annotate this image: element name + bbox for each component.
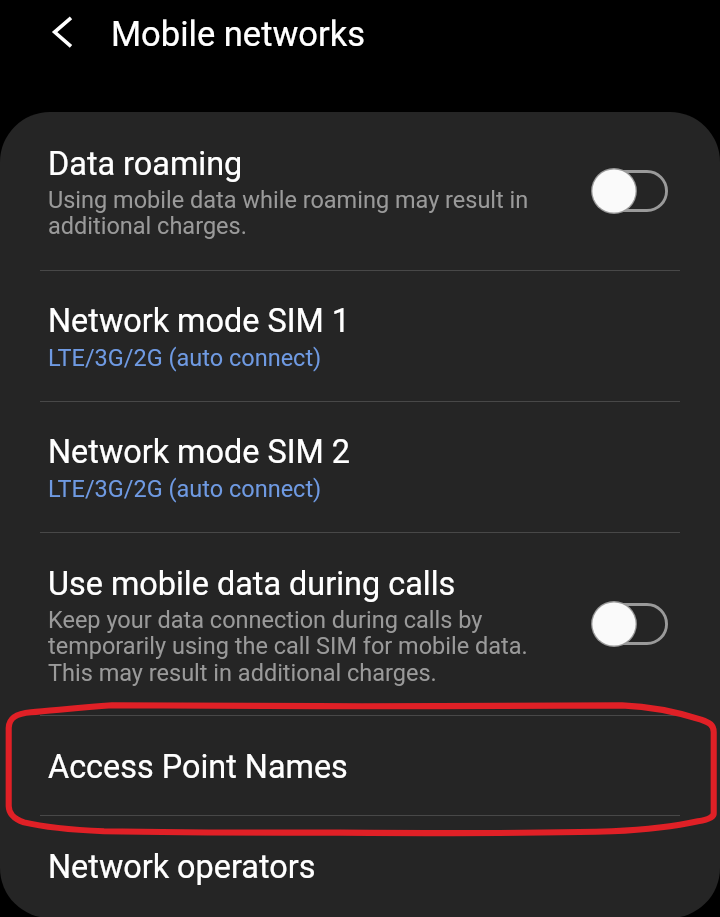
staticText: Using mobile data while roaming may resu… [48,186,548,240]
staticText: Network operators [48,848,316,886]
staticText: Mobile networks [111,14,366,54]
staticText: Data roaming [48,145,243,183]
staticText: LTE/3G/2G (auto connect) [48,344,322,372]
button[interactable]: Network operators [0,816,720,916]
button[interactable]: Network mode SIM 2 [0,402,720,533]
staticText: Network mode SIM 1 [48,302,351,340]
staticText: Use mobile data during calls [48,565,456,603]
button[interactable]: Access Point Names [0,716,720,815]
button[interactable]: Use mobile data during calls [0,533,720,715]
staticText: Keep your data connection during calls b… [48,606,548,687]
staticText: LTE/3G/2G (auto connect) [48,475,322,503]
button[interactable]: Network mode SIM 1 [0,271,720,402]
button[interactable]: Toggle [593,601,669,647]
button[interactable]: Data roaming [0,112,720,270]
button[interactable]: Toggle [593,168,669,214]
staticText: Access Point Names [48,748,348,786]
button[interactable]: Navigate up [38,8,92,62]
staticText: Network mode SIM 2 [48,433,351,471]
